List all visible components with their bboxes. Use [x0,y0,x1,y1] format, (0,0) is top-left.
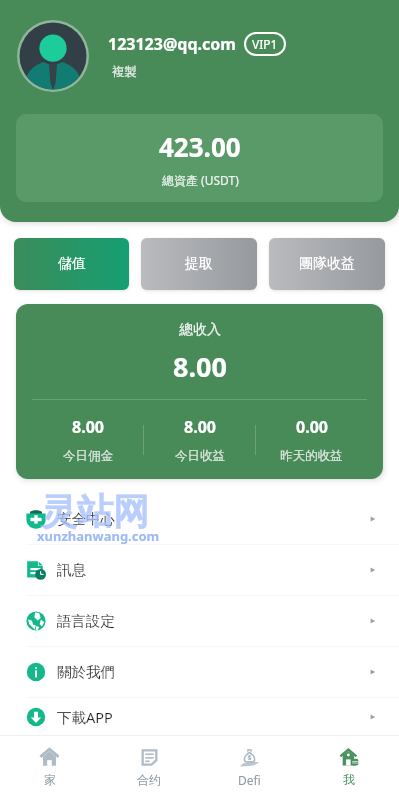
staticText: 8.00 [173,348,227,385]
button[interactable]: 提取 [141,238,257,290]
staticText: 8.00 [72,416,104,438]
button[interactable]: 語言設定 [0,596,399,647]
staticText: 123123@qq.com [108,33,236,55]
staticText: 家 [44,772,56,787]
staticText: 關於我們 [57,663,115,681]
button[interactable]: 儲值 [14,238,129,290]
button[interactable]: 合约 [99,736,199,799]
button[interactable]: 我 [299,736,399,799]
button[interactable]: 下載APP [0,698,399,735]
staticText: 語言設定 [57,612,115,630]
staticText: 0.00 [296,416,328,438]
staticText: 複製 [112,64,137,80]
staticText: 8.00 [184,416,216,438]
staticText: 提取 [185,255,213,273]
staticText: Defi [238,772,261,788]
staticText: 423.00 [159,129,241,164]
staticText: 安全中心 [57,510,115,528]
staticText: 灵站网 [41,489,149,534]
button[interactable]: 家 [0,736,99,799]
button[interactable]: Defi [199,736,299,799]
staticText: 我 [343,772,355,787]
button[interactable]: 安全中心 [0,494,399,545]
staticText: 團隊收益 [299,255,355,273]
button[interactable]: 關於我們 [0,647,399,698]
staticText: 今日收益 [175,448,225,464]
button[interactable]: 團隊收益 [269,238,385,290]
staticText: xunzhanwang.com [37,527,160,545]
button[interactable]: 訊息 [0,545,399,596]
staticText: 總資產 (USDT) [162,172,239,188]
staticText: VIP1 [252,36,278,52]
staticText: 總收入 [179,321,221,339]
staticText: 昨天的收益 [280,448,343,464]
staticText: 下載APP [57,707,113,727]
staticText: 儲值 [58,255,86,273]
staticText: 訊息 [57,561,86,579]
staticText: 今日佣金 [63,448,113,464]
staticText: 合约 [137,772,161,787]
